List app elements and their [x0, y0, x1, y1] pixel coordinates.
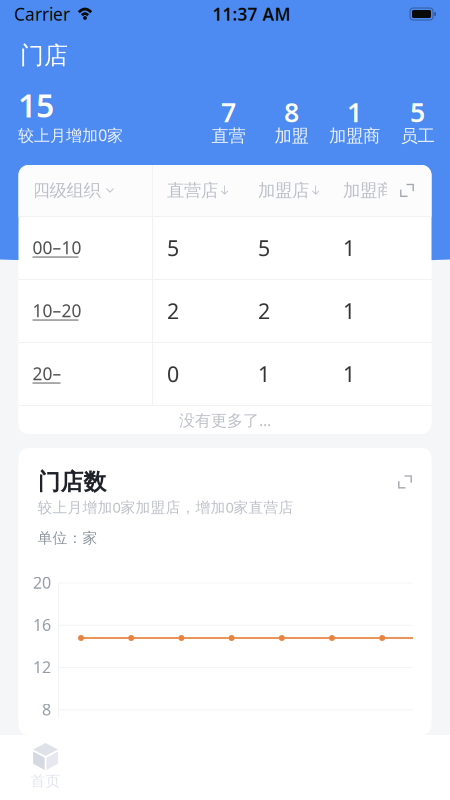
staticText: 12: [33, 656, 51, 678]
button[interactable]: Expand chart: [397, 474, 412, 489]
staticText: 15: [18, 84, 54, 126]
staticText: 11:37 AM: [212, 2, 290, 25]
staticText: 门店: [20, 41, 68, 70]
staticText: 00–10: [32, 236, 81, 259]
staticText: 较上月增加0家加盟店，增加0家直营店: [37, 497, 293, 517]
staticText: 加盟商: [329, 125, 380, 147]
staticText: 没有更多了...: [179, 409, 271, 431]
staticText: 1: [343, 360, 355, 388]
staticText: 直营: [211, 125, 245, 147]
staticText: 1: [347, 94, 362, 130]
staticText: 16: [33, 614, 51, 635]
staticText: 0: [167, 360, 179, 388]
staticText: 2: [167, 297, 179, 325]
staticText: 2: [258, 297, 270, 325]
staticText: 7: [221, 94, 236, 130]
staticText: 门店数: [37, 468, 106, 496]
staticText: 直营店: [167, 180, 218, 201]
staticText: 8: [42, 699, 51, 720]
staticText: 员工: [400, 125, 434, 147]
staticText: 5: [258, 234, 270, 262]
staticText: 20–: [32, 362, 61, 385]
staticText: 较上月增加0家: [18, 124, 123, 146]
staticText: 加盟商: [343, 180, 394, 201]
staticText: 5: [167, 234, 179, 262]
staticText: 加盟: [274, 125, 308, 147]
staticText: 5: [410, 94, 425, 130]
staticText: 单位：家: [37, 529, 97, 547]
staticText: 8: [284, 94, 299, 130]
staticText: 加盟店: [258, 180, 309, 201]
button[interactable]: 首页: [0, 740, 91, 792]
button[interactable]: Expand table: [399, 183, 414, 198]
staticText: Carrier: [14, 2, 70, 25]
staticText: 1: [343, 297, 355, 325]
staticText: 20: [33, 572, 51, 593]
staticText: 1: [258, 360, 270, 388]
staticText: 首页: [30, 772, 60, 790]
staticText: 10–20: [32, 299, 81, 322]
staticText: 1: [343, 234, 355, 262]
staticText: 四级组织: [32, 180, 100, 201]
